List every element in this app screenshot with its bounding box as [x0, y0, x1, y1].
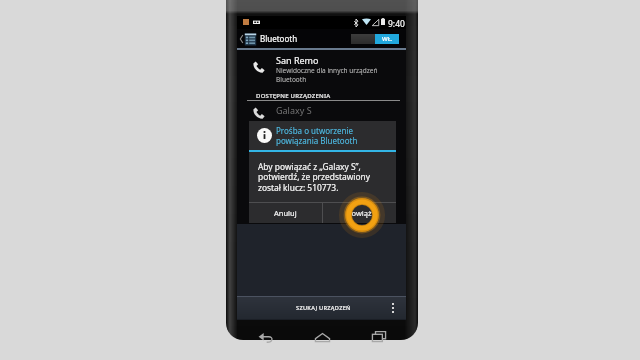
button[interactable]: More options [386, 297, 400, 319]
button[interactable]: San Remo [237, 50, 406, 87]
staticText: 9:40 [388, 18, 405, 30]
staticText: DOSTĘPNE URZĄDZENIA [256, 92, 331, 100]
staticText: Prośba o utworzenie powiązania Bluetooth [276, 125, 358, 147]
staticText: Niewidoczne dla innych urządzeń Bluetoot… [276, 66, 378, 83]
staticText: SZUKAJ URZĄDZEŃ [296, 304, 351, 312]
button[interactable]: Home [308, 324, 336, 350]
button[interactable]: WŁ. [351, 34, 399, 44]
staticText: WŁ. [382, 35, 393, 43]
staticText: Powiąż [347, 208, 372, 218]
staticText: Anuluj [274, 208, 297, 218]
button[interactable]: Galaxy S [237, 101, 406, 127]
button[interactable]: Anuluj [249, 203, 322, 223]
button[interactable]: Back [251, 324, 279, 350]
button[interactable]: SZUKAJ URZĄDZEŃ [239, 297, 408, 319]
button[interactable]: Powiąż [323, 203, 396, 223]
staticText: Galaxy S [276, 104, 312, 116]
button[interactable]: Recent apps [365, 323, 393, 349]
button[interactable]: Navigate up [237, 31, 245, 46]
staticText: Bluetooth [260, 33, 298, 44]
staticText: Aby powiązać z „Galaxy S”, potwierdź, że… [258, 161, 370, 194]
staticText: San Remo [276, 54, 319, 66]
